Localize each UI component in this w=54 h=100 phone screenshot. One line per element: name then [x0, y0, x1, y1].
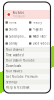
staticText: Your movies [6, 69, 22, 73]
staticText: Settings [6, 80, 17, 84]
button[interactable]: History [27, 19, 50, 26]
staticText: Downloads [6, 64, 21, 68]
button[interactable]: Subscriptions [3, 33, 27, 40]
staticText: Watch later [33, 35, 47, 38]
staticText: Home [9, 21, 17, 24]
staticText: YouTube [12, 11, 24, 14]
button[interactable]: Home [3, 19, 27, 26]
staticText: Premium [12, 15, 24, 18]
button[interactable]: Time watched [3, 52, 50, 58]
staticText: Get YouTube Premium [6, 75, 37, 78]
button[interactable]: Your data in YouTube [3, 58, 50, 63]
button[interactable]: Help & feedback [3, 85, 50, 90]
button[interactable]: Playlists [27, 26, 50, 33]
button[interactable]: Settings [3, 79, 50, 85]
button[interactable]: Downloads [3, 63, 50, 69]
staticText: Shorts [9, 28, 17, 31]
button[interactable]: Library [3, 40, 27, 47]
button[interactable]: Liked videos [27, 40, 50, 47]
staticText: Subscriptions [9, 35, 26, 38]
staticText: Liked videos [33, 42, 49, 45]
staticText: Library [9, 42, 17, 45]
staticText: Time watched [6, 53, 24, 57]
button[interactable]: Your movies [3, 69, 50, 74]
staticText: Playlists [33, 28, 43, 31]
staticText: Help & feedback [6, 86, 29, 89]
button[interactable]: Get YouTube Premium [3, 74, 50, 79]
staticText: History [33, 21, 42, 24]
button[interactable]: Your channel [3, 47, 50, 52]
staticText: Your channel [6, 48, 24, 51]
button[interactable]: YouTube [3, 10, 50, 19]
staticText: Your data in YouTube [6, 59, 35, 62]
button[interactable]: Watch later [27, 33, 50, 40]
button[interactable]: Shorts [3, 26, 27, 33]
